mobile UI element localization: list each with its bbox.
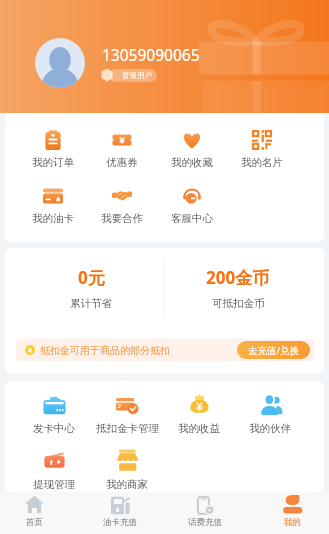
button[interactable]: 我的名片: [226, 122, 298, 168]
button[interactable]: 抵扣金卡管理: [91, 385, 163, 431]
button[interactable]: 优惠券: [86, 122, 158, 168]
staticText: 抵扣金可用于商品的部分抵扣: [40, 344, 170, 357]
other: Phone top-up: [196, 496, 215, 515]
staticText: 累计节省: [70, 297, 112, 310]
other: Home: [25, 495, 44, 514]
staticText: 发卡中心: [33, 422, 75, 435]
staticText: 13059090065: [102, 44, 200, 65]
staticText: 可抵扣金币: [212, 297, 265, 310]
staticText: 抵扣金卡管理: [96, 422, 159, 435]
staticText: 客服中心: [171, 212, 213, 225]
button[interactable]: 发卡中心: [18, 385, 90, 431]
button[interactable]: 去充值/兑换: [237, 341, 310, 359]
staticText: 我要合作: [101, 212, 143, 225]
staticText: 优惠券: [106, 156, 138, 169]
staticText: 油卡充值: [103, 517, 137, 528]
staticText: 我的伙伴: [249, 422, 291, 435]
staticText: 我的收益: [178, 422, 220, 435]
staticText: 我的订单: [32, 156, 74, 169]
button[interactable]: 我的收益: [163, 385, 235, 431]
staticText: 首页: [26, 517, 43, 528]
button[interactable]: 客服中心: [156, 178, 228, 224]
other: Profile: [283, 495, 302, 514]
staticText: 提现管理: [33, 478, 75, 491]
staticText: 我的商家: [106, 478, 148, 491]
button[interactable]: Phone top-up: [165, 492, 245, 534]
staticText: 我的收藏: [171, 156, 213, 169]
button[interactable]: Fuel card top-up: [80, 492, 160, 534]
button[interactable]: 0元: [41, 266, 141, 318]
staticText: 我的: [284, 517, 301, 528]
staticText: 话费充值: [188, 517, 222, 528]
staticText: 0元: [78, 266, 105, 289]
button[interactable]: 200金币: [188, 266, 288, 318]
button[interactable]: 我的伙伴: [234, 385, 306, 431]
button[interactable]: Profile: [252, 492, 329, 534]
button[interactable]: 我的订单: [17, 122, 89, 168]
button[interactable]: 我要合作: [86, 178, 158, 224]
staticText: 我的名片: [241, 156, 283, 169]
button[interactable]: 提现管理: [18, 441, 90, 487]
staticText: 普通用户: [122, 71, 152, 80]
other: Fuel card top-up: [111, 496, 130, 515]
staticText: 我的油卡: [32, 212, 74, 225]
button[interactable]: Home: [0, 492, 74, 534]
staticText: 去充值/兑换: [248, 344, 300, 357]
staticText: 200金币: [206, 266, 270, 289]
button[interactable]: 我的商家: [91, 441, 163, 487]
button[interactable]: 我的油卡: [17, 178, 89, 224]
button[interactable]: 我的收藏: [156, 122, 228, 168]
